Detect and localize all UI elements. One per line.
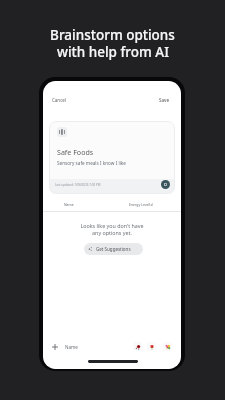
staticText: any options yet. <box>92 229 132 236</box>
staticText: Name <box>64 202 74 207</box>
button[interactable]: Tulip <box>147 342 156 351</box>
staticText: Energy Level(s) <box>129 202 154 207</box>
button[interactable]: Cancel <box>48 93 71 107</box>
button[interactable]: Get Suggestions <box>84 243 143 255</box>
staticText: D <box>164 182 168 188</box>
button[interactable]: Rose <box>133 342 142 351</box>
staticText: Sensory safe meals I know I like <box>57 160 126 166</box>
staticText: Name <box>65 344 78 350</box>
button[interactable]: Bouquet <box>163 342 172 351</box>
staticText: Cancel <box>52 97 67 103</box>
staticText: Last updated: 1/08/2025 7:00 PM <box>55 183 101 187</box>
staticText: Get Suggestions <box>96 246 131 252</box>
button[interactable]: Save <box>155 93 174 107</box>
staticText: Looks like you don't have <box>80 222 144 229</box>
button[interactable]: Name <box>49 341 81 353</box>
staticText: Safe Foods <box>57 147 94 157</box>
staticText: with help from AI <box>57 43 169 61</box>
staticText: Brainstorm options <box>50 26 175 44</box>
staticText: Save <box>159 97 170 103</box>
button[interactable]: Safe Foods <box>49 121 175 194</box>
